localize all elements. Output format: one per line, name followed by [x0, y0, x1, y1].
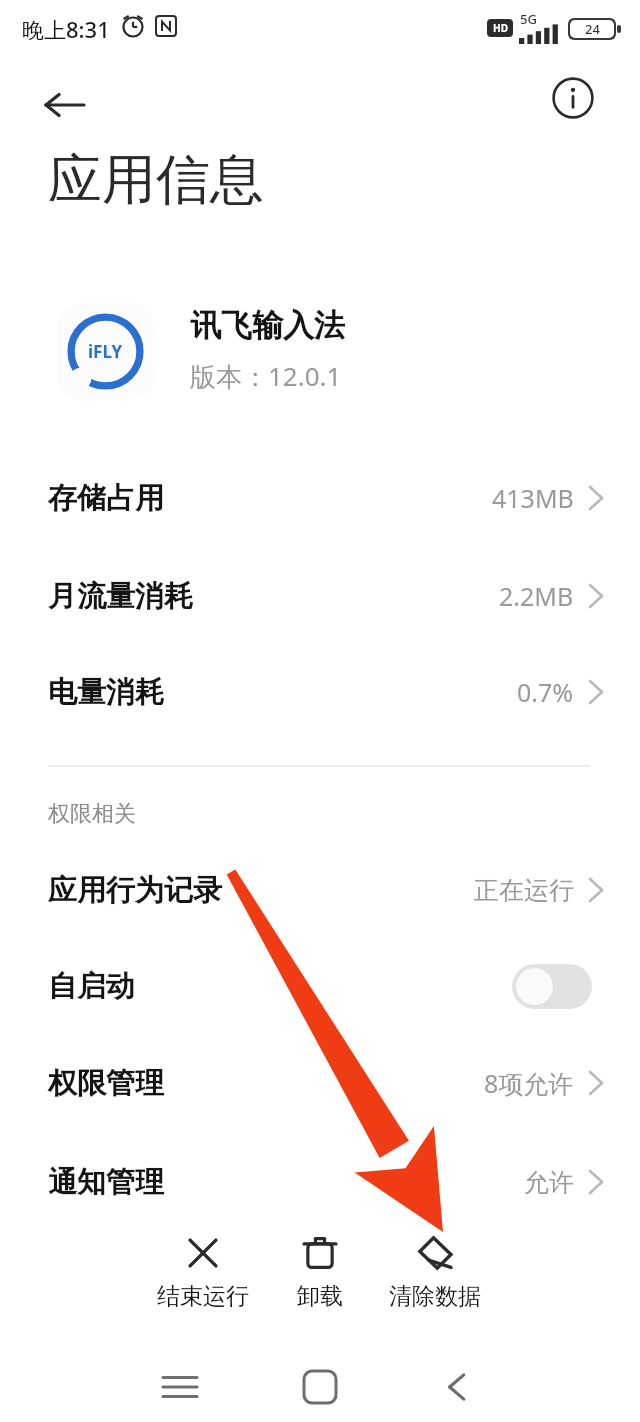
staticText: 允许: [524, 1167, 574, 1198]
button[interactable]: 自启动: [0, 950, 640, 1022]
staticText: 自启动: [48, 968, 135, 1005]
button[interactable]: Force stop: [143, 1234, 263, 1311]
staticText: 应用行为记录: [48, 872, 222, 909]
staticText: 卸载: [297, 1282, 343, 1311]
staticText: 8项允许: [484, 1066, 574, 1100]
staticText: 413MB: [492, 481, 574, 515]
button[interactable]: Back: [418, 1347, 498, 1422]
staticText: 2.2MB: [499, 579, 574, 613]
button[interactable]: App details: [543, 68, 603, 128]
staticText: 存储占用: [48, 480, 164, 517]
staticText: 0.7%: [517, 675, 574, 709]
staticText: iFLY: [88, 340, 123, 363]
staticText: 5G: [520, 10, 537, 28]
staticText: 版本：12.0.1: [190, 358, 342, 394]
staticText: 电量消耗: [48, 674, 164, 711]
staticText: 清除数据: [389, 1282, 481, 1311]
staticText: 应用信息: [48, 146, 264, 214]
staticText: 权限管理: [48, 1065, 164, 1102]
button[interactable]: Clear data: [375, 1234, 495, 1311]
staticText: HD: [493, 21, 508, 35]
button[interactable]: 月流量消耗: [0, 560, 640, 632]
button[interactable]: 通知管理: [0, 1146, 640, 1218]
button[interactable]: Uninstall: [260, 1234, 380, 1311]
button[interactable]: 电量消耗: [0, 656, 640, 728]
button[interactable]: 权限管理: [0, 1047, 640, 1119]
button[interactable]: Back: [28, 68, 102, 142]
staticText: 权限相关: [48, 800, 136, 828]
button[interactable]: 应用行为记录: [0, 854, 640, 926]
button[interactable]: 存储占用: [0, 462, 640, 534]
button[interactable]: Recents: [140, 1347, 220, 1422]
staticText: 月流量消耗: [48, 578, 193, 615]
staticText: 24: [585, 20, 600, 38]
staticText: 通知管理: [48, 1164, 164, 1201]
staticText: 晚上8:31: [22, 14, 110, 44]
button[interactable]: Home: [280, 1347, 360, 1422]
staticText: 结束运行: [157, 1282, 249, 1311]
staticText: 正在运行: [474, 875, 574, 906]
staticText: 讯飞输入法: [190, 306, 345, 345]
